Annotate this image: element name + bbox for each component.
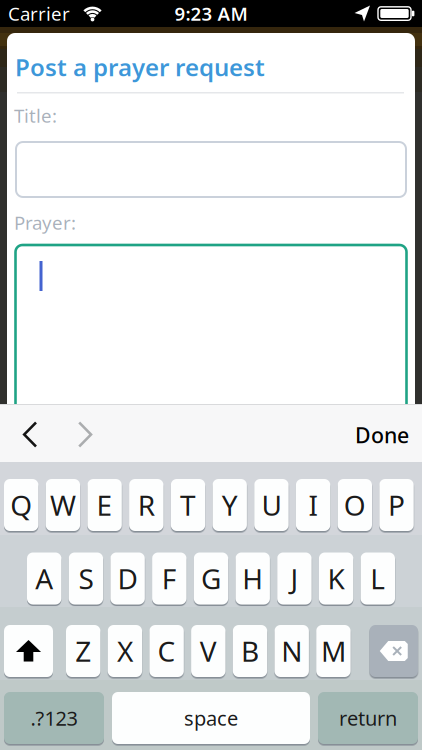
button[interactable]: Z <box>66 625 100 677</box>
button[interactable]: Y <box>212 479 247 531</box>
button[interactable]: H <box>235 552 270 604</box>
button[interactable]: Prayer <box>15 245 406 417</box>
button[interactable]: O <box>338 479 372 531</box>
staticText: W <box>50 486 76 524</box>
staticText: N <box>281 632 302 670</box>
button[interactable]: N <box>274 625 309 677</box>
button[interactable]: G <box>194 552 228 604</box>
button[interactable]: Delete <box>369 625 418 677</box>
staticText: space <box>184 705 238 731</box>
staticText: B <box>241 632 259 670</box>
button[interactable]: Q <box>4 479 38 531</box>
staticText: Y <box>222 486 238 524</box>
staticText: U <box>261 486 281 524</box>
staticText: Done <box>355 421 409 449</box>
staticText: A <box>35 560 53 597</box>
button[interactable]: Done <box>289 406 409 464</box>
staticText: H <box>242 560 263 597</box>
staticText: E <box>97 486 113 524</box>
button[interactable]: C <box>149 625 184 677</box>
staticText: Post a prayer request <box>15 51 265 83</box>
staticText: S <box>78 560 93 597</box>
button[interactable]: P <box>379 479 414 531</box>
button[interactable]: M <box>316 625 351 677</box>
button[interactable]: Next field <box>78 414 102 455</box>
button[interactable]: K <box>319 552 353 604</box>
staticText: T <box>180 486 196 524</box>
staticText: G <box>201 560 221 597</box>
button[interactable]: I <box>296 479 330 531</box>
button[interactable]: Previous field <box>23 414 47 455</box>
button[interactable]: W <box>46 479 80 531</box>
staticText: P <box>388 486 405 524</box>
button[interactable]: E <box>87 479 122 531</box>
staticText: X <box>117 632 133 670</box>
staticText: Z <box>75 632 91 670</box>
button[interactable]: A <box>27 552 61 604</box>
button[interactable]: R <box>129 479 163 531</box>
staticText: L <box>370 560 385 597</box>
button[interactable]: U <box>254 479 289 531</box>
staticText: Carrier <box>8 1 70 26</box>
staticText: .?123 <box>30 705 77 731</box>
button[interactable]: space <box>112 692 310 744</box>
staticText: M <box>321 632 346 670</box>
staticText: D <box>118 560 138 597</box>
staticText: 9:23 AM <box>174 1 247 26</box>
button[interactable]: .?123 <box>4 692 104 744</box>
button[interactable]: T <box>171 479 205 531</box>
button[interactable]: Title <box>16 142 406 197</box>
staticText: Title: <box>14 103 57 128</box>
button[interactable]: return <box>318 692 418 744</box>
button[interactable]: S <box>69 552 103 604</box>
staticText: O <box>344 486 366 524</box>
button[interactable]: D <box>110 552 145 604</box>
staticText: F <box>162 560 177 597</box>
button[interactable]: X <box>108 625 142 677</box>
button[interactable]: B <box>233 625 267 677</box>
staticText: Prayer: <box>14 210 76 235</box>
button[interactable]: F <box>152 552 186 604</box>
staticText: C <box>158 632 176 670</box>
staticText: R <box>138 486 155 524</box>
button[interactable]: Shift <box>4 625 53 677</box>
button[interactable]: J <box>277 552 312 604</box>
staticText: K <box>328 560 345 597</box>
button[interactable]: V <box>191 625 225 677</box>
staticText: J <box>290 560 298 597</box>
staticText: I <box>309 486 318 524</box>
staticText: V <box>200 632 217 670</box>
staticText: return <box>339 705 397 731</box>
button[interactable]: L <box>361 552 395 604</box>
staticText: Q <box>10 486 32 524</box>
